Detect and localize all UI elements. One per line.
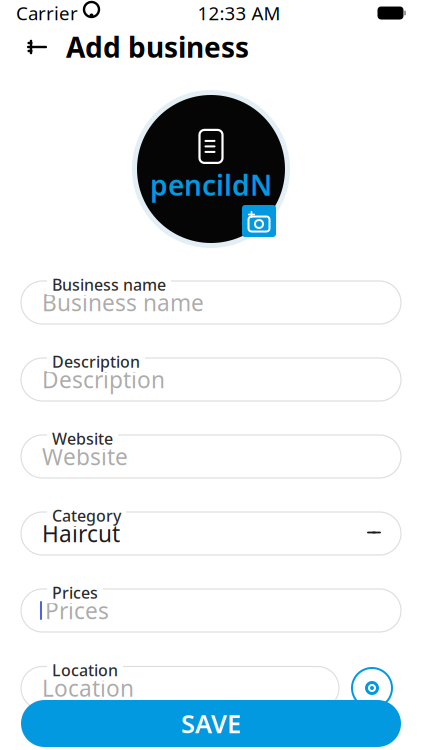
staticText: Business name — [42, 287, 204, 317]
button[interactable]: Website — [21, 428, 401, 478]
staticText: Website — [52, 428, 113, 449]
button[interactable]: Change business photo — [132, 90, 290, 248]
staticText: Category — [52, 505, 121, 526]
staticText: 12:33 AM — [197, 1, 280, 25]
staticText: Location — [52, 659, 118, 681]
button[interactable]: Haircut — [21, 505, 401, 555]
staticText: Description — [42, 364, 165, 394]
staticText: Prices — [45, 595, 109, 625]
button[interactable]: Location — [21, 659, 339, 709]
staticText: pencildN — [150, 166, 272, 204]
staticText: Haircut — [42, 518, 120, 548]
staticText: Prices — [52, 582, 98, 603]
button[interactable]: SAVE — [21, 700, 401, 747]
staticText: Add business — [66, 28, 249, 66]
button[interactable]: Description — [21, 351, 401, 401]
staticText: SAVE — [181, 707, 241, 740]
button[interactable]: Back — [22, 32, 52, 62]
staticText: Location — [42, 673, 134, 703]
staticText: Carrier — [16, 1, 78, 25]
button[interactable]: Prices — [21, 582, 401, 632]
staticText: Description — [52, 351, 140, 372]
button[interactable]: Use current location — [350, 666, 394, 710]
staticText: Website — [42, 441, 128, 471]
button[interactable]: Business name — [21, 274, 401, 324]
staticText: Business name — [52, 274, 166, 295]
